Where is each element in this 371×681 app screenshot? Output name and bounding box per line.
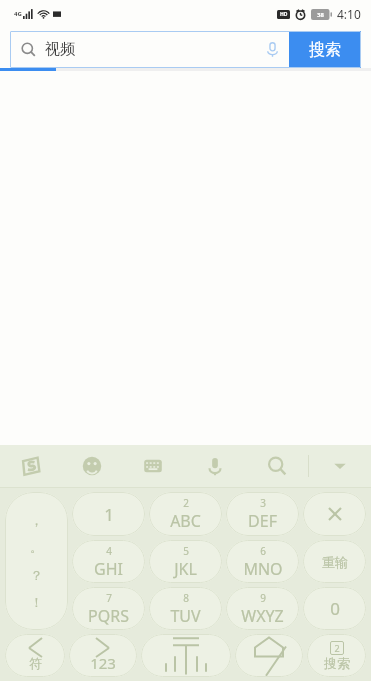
button[interactable]: 3	[226, 492, 299, 536]
button[interactable]: Delete	[303, 492, 366, 536]
staticText: ？	[30, 567, 43, 583]
button[interactable]: 9	[226, 587, 299, 630]
staticText: 2	[334, 642, 340, 654]
button[interactable]: Re-enter	[303, 540, 366, 583]
staticText: 123	[90, 653, 116, 673]
staticText: 。	[30, 539, 43, 555]
button[interactable]: 6	[226, 540, 299, 583]
button[interactable]: 5	[149, 540, 222, 583]
staticText: WXYZ	[241, 605, 284, 627]
staticText: 4G	[14, 10, 22, 18]
staticText: 5	[183, 544, 189, 558]
button[interactable]: ，	[5, 492, 68, 630]
staticText: ABC	[170, 510, 201, 532]
staticText: JKL	[174, 558, 197, 580]
button[interactable]: Collapse keyboard	[309, 445, 371, 487]
staticText: GHI	[94, 558, 123, 580]
button[interactable]: Keyboard layout	[122, 445, 184, 487]
staticText: 6	[260, 544, 266, 558]
button[interactable]: 搜索	[289, 31, 361, 68]
button[interactable]: Space	[141, 634, 231, 677]
staticText: MNO	[243, 558, 283, 580]
button[interactable]: 2	[149, 492, 222, 536]
staticText: 符	[29, 655, 42, 671]
button[interactable]: Sogou input	[0, 445, 61, 487]
button[interactable]: 7	[72, 587, 145, 630]
staticText: 搜索	[324, 655, 350, 671]
button[interactable]: Chinese English toggle	[235, 634, 303, 677]
staticText: 0	[330, 597, 340, 620]
staticText: 重输	[322, 554, 348, 570]
staticText: 2	[183, 496, 189, 510]
staticText: DEF	[248, 510, 277, 532]
staticText: 搜索	[309, 40, 341, 60]
staticText: 38	[317, 11, 324, 19]
staticText: PQRS	[88, 605, 129, 627]
button[interactable]: 1	[72, 492, 145, 536]
button[interactable]: Voice input	[184, 445, 246, 487]
staticText: 9	[260, 591, 266, 605]
button[interactable]: 4	[72, 540, 145, 583]
button[interactable]: 视频	[10, 31, 255, 68]
button[interactable]: 8	[149, 587, 222, 630]
button[interactable]: Emoji	[61, 445, 122, 487]
staticText: 1	[104, 503, 114, 526]
staticText: ！	[30, 594, 43, 610]
button[interactable]: Voice search	[255, 31, 289, 68]
staticText: 4:10	[337, 6, 361, 22]
staticText: 7	[106, 591, 112, 605]
button[interactable]: Zero	[303, 587, 366, 630]
button[interactable]: Search	[307, 634, 366, 677]
staticText: 3	[260, 496, 266, 510]
staticText: 视频	[45, 40, 75, 59]
staticText: 8	[183, 591, 189, 605]
staticText: 4	[106, 544, 112, 558]
staticText: TUV	[170, 605, 201, 627]
button[interactable]: Symbols	[5, 634, 65, 677]
button[interactable]: Search	[246, 445, 308, 487]
button[interactable]: Numbers	[69, 634, 137, 677]
staticText: HD	[280, 11, 288, 18]
staticText: ，	[30, 512, 43, 528]
